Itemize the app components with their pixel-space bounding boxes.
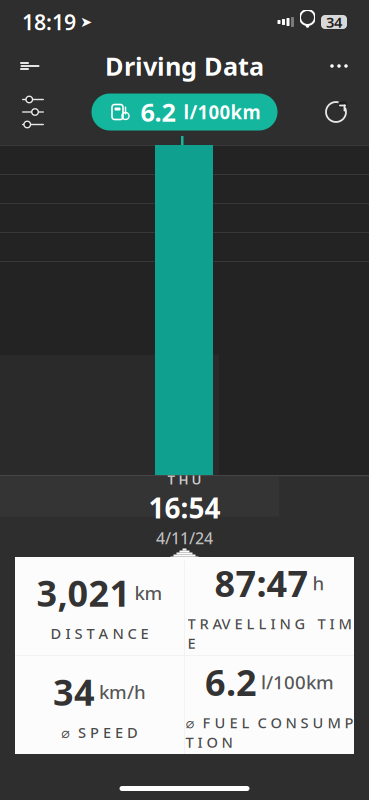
button[interactable]: More options — [317, 44, 361, 88]
staticText: 87:47 — [214, 559, 308, 607]
staticText: ⌀ S P E E D — [61, 723, 138, 742]
staticText: l/100km — [261, 670, 334, 694]
staticText: Driving Data — [105, 49, 264, 83]
staticText: ➤ — [80, 14, 92, 30]
staticText: 16:54 — [148, 489, 220, 526]
button[interactable]: 6.2 — [91, 93, 277, 130]
staticText: 4/11/24 — [156, 527, 213, 548]
staticText: 6.2 — [205, 658, 257, 706]
staticText: km — [134, 580, 162, 605]
button[interactable]: Refresh — [313, 89, 359, 135]
staticText: 3,021 — [36, 569, 130, 617]
staticText: 34 — [326, 12, 342, 32]
staticText: ⌀ F U E L C O N S U M P T I O N — [185, 713, 353, 752]
staticText: T R AV E L L I N G T I M E — [187, 614, 351, 653]
button[interactable]: Filter — [10, 89, 56, 135]
staticText: 6.2 — [140, 95, 175, 129]
staticText: h — [312, 571, 324, 595]
staticText: 18:19 — [22, 8, 76, 36]
staticText: l/100km — [183, 100, 260, 124]
staticText: D I S T A N C E — [50, 624, 148, 643]
staticText: 34 — [53, 668, 95, 716]
staticText: km/h — [99, 679, 146, 704]
button[interactable]: Back — [8, 44, 52, 88]
staticText: T H U — [167, 470, 201, 488]
